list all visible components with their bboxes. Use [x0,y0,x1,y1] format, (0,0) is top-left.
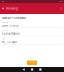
staticText: Jamie Rivera [2,24,18,27]
staticText: Booking [6,7,18,10]
button[interactable]: Home [31,68,33,71]
staticText: NEW APPOINTMENT [2,16,26,20]
button[interactable]: Recents [39,68,41,71]
staticText: Full name [2,21,8,23]
staticText: Date [2,38,5,40]
staticText: Service [2,30,8,32]
staticText: Fri, 12 Apr [2,40,17,44]
button[interactable]: Back [22,68,25,71]
staticText: Consultation [2,32,20,35]
staticText: CONFIRM [29,62,35,64]
button[interactable]: Back [1,7,4,10]
staticText: LTE [59,1,62,2]
staticText: 9:41 [1,1,4,2]
button[interactable]: CONFIRM [27,61,37,65]
